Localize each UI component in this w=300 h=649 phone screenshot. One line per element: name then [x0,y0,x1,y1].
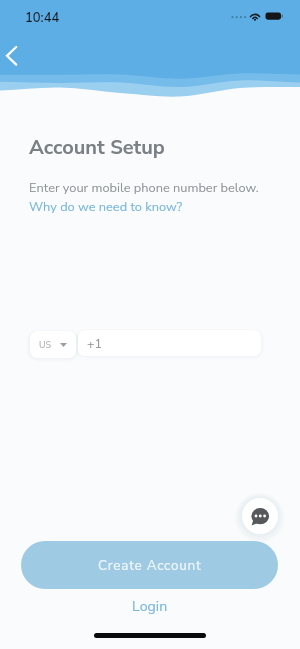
staticText: 10:44 [25,9,60,27]
button[interactable]: +1 [78,330,261,356]
staticText: Account Setup [29,134,165,161]
staticText: Enter your mobile phone number below. [29,179,259,196]
staticText: +1 [87,335,103,352]
button[interactable]: Back [0,38,36,74]
button[interactable]: Why do we need to know? [29,198,183,215]
button[interactable]: Chat support [242,498,278,534]
staticText: Create Account [98,556,202,574]
button[interactable]: US [30,331,76,358]
staticText: Login [132,597,168,616]
staticText: US [39,339,52,351]
button[interactable]: Create Account [21,541,278,589]
button[interactable]: Login [116,595,184,618]
staticText: Why do we need to know? [29,198,183,215]
